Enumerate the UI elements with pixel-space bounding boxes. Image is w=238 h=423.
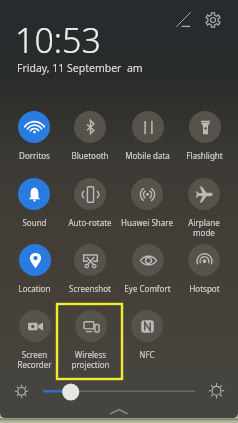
staticText: Eye Comfort — [124, 283, 171, 294]
staticText: Airplane mode — [188, 217, 220, 238]
button[interactable]: Flashlight — [176, 111, 232, 175]
button[interactable]: Bluetooth — [62, 111, 118, 175]
button[interactable]: Mobile data — [119, 111, 175, 175]
staticText: Hotspot — [189, 283, 220, 294]
button[interactable]: Eye Comfort — [119, 244, 175, 308]
button[interactable]: Location — [6, 244, 62, 308]
button[interactable]: Airplane mode — [176, 178, 232, 242]
staticText: Auto-rotate — [68, 217, 112, 228]
button[interactable]: Screen Recorder — [6, 310, 62, 374]
staticText: Dorritos — [19, 150, 50, 161]
staticText: NFC — [139, 349, 155, 360]
button[interactable]: Auto-rotate — [62, 178, 118, 242]
staticText: Screen Recorder — [17, 349, 52, 370]
button[interactable]: Screenshot — [62, 244, 118, 308]
button[interactable]: Sound — [6, 178, 62, 242]
button[interactable]: Edit — [170, 7, 196, 33]
button[interactable]: Dorritos — [6, 111, 62, 175]
button[interactable]: Wireless projection — [62, 310, 118, 374]
staticText: Wireless projection — [71, 349, 110, 370]
button[interactable]: Hotspot — [176, 244, 232, 308]
staticText: Location — [18, 283, 51, 294]
staticText: Bluetooth — [71, 150, 109, 161]
staticText: Flashlight — [186, 150, 223, 161]
button[interactable]: Huawei Share — [119, 178, 175, 242]
button[interactable]: Settings — [200, 7, 226, 33]
staticText: Huawei Share — [121, 217, 173, 228]
staticText: Screenshot — [69, 283, 111, 294]
staticText: Friday, 11 September am — [17, 61, 143, 75]
button[interactable]: NFC — [119, 310, 175, 374]
staticText: Mobile data — [125, 150, 170, 161]
staticText: 10:53 — [15, 17, 101, 63]
staticText: Sound — [22, 217, 47, 228]
